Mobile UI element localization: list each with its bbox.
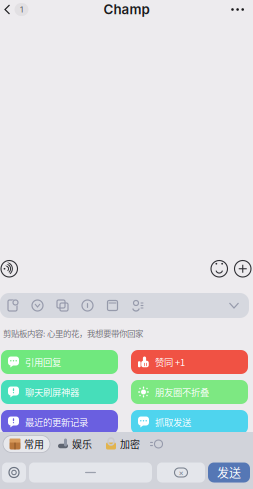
staticText: Champ [103, 1, 149, 17]
staticText: 发送 [217, 464, 241, 481]
button[interactable]: 加密 [99, 435, 146, 452]
button[interactable]: Voice message [0, 255, 23, 282]
button[interactable]: Emoji panel [147, 435, 165, 452]
button[interactable]: 最近的更新记录 [1, 410, 118, 434]
button[interactable]: More [222, 1, 253, 18]
staticText: 赞同 +1 [155, 355, 185, 369]
button[interactable]: Collapse toolbar [219, 293, 249, 318]
button[interactable]: Emoji [205, 255, 231, 282]
staticText: 剪贴板内容: 心里的花，我想要带你回家 [3, 327, 143, 339]
button[interactable]: Keyboard settings [2, 462, 26, 482]
staticText: 聊天刷屏神器 [25, 385, 79, 399]
staticText: 加密 [120, 437, 140, 451]
staticText: 引用回复 [25, 355, 61, 369]
staticText: × [178, 468, 183, 477]
button[interactable]: 抓取发送 [131, 410, 248, 434]
button[interactable]: Back [0, 0, 36, 19]
button[interactable]: Delete [157, 462, 205, 482]
button[interactable]: 赞同 +1 [131, 350, 248, 374]
button[interactable]: 发送 [208, 462, 250, 482]
staticText: 常用 [24, 437, 44, 451]
staticText: 朋友圈不折叠 [155, 385, 209, 399]
button[interactable]: 朋友圈不折叠 [131, 380, 248, 404]
button[interactable]: Toolbar item 1 [0, 293, 25, 318]
button[interactable]: Toolbar item 6 [125, 293, 150, 318]
staticText: 娱乐 [72, 437, 92, 451]
button[interactable]: 常用 [3, 435, 50, 452]
button[interactable]: 聊天刷屏神器 [1, 380, 118, 404]
button[interactable]: Toolbar item 3 [50, 293, 75, 318]
button[interactable]: Toolbar item 5 [100, 293, 125, 318]
button[interactable]: 引用回复 [1, 350, 118, 374]
button[interactable]: 娱乐 [51, 435, 98, 452]
button[interactable]: Toolbar item 4 [75, 293, 100, 318]
button[interactable]: More actions [231, 255, 253, 282]
staticText: 抓取发送 [155, 415, 191, 429]
staticText: 1 [20, 5, 23, 14]
button[interactable]: Space [29, 462, 152, 482]
staticText: 最近的更新记录 [25, 415, 88, 429]
button[interactable]: Toolbar item 2 [25, 293, 50, 318]
